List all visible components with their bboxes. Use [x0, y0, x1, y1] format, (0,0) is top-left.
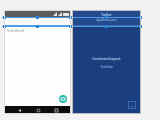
staticText: ConstraintLayout [92, 56, 121, 61]
button[interactable]: Send email [59, 95, 67, 103]
staticText: Toolbar [101, 13, 112, 17]
button[interactable]: Back [15, 106, 23, 114]
staticText: TextView [100, 65, 113, 69]
button[interactable]: Recents [52, 106, 60, 114]
staticText: AppBarLayout [96, 18, 117, 22]
button[interactable]: Floating action button [128, 101, 136, 109]
button[interactable]: Toolbar [72, 10, 141, 114]
button[interactable]: Home [34, 106, 42, 114]
staticText: Hello World! [7, 29, 25, 33]
staticText: fab [130, 104, 134, 107]
button[interactable]: Hello World! [4, 10, 71, 114]
